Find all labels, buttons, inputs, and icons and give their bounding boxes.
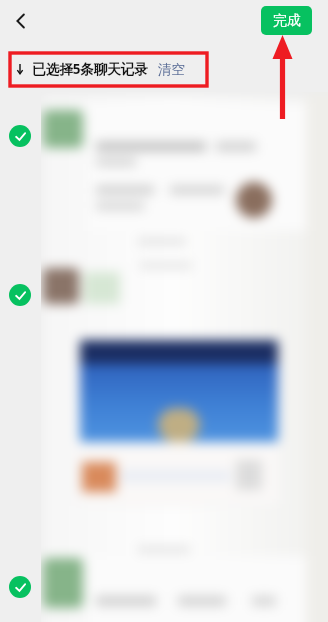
staticText: 完成 [273, 12, 301, 30]
button[interactable]: 已选择5条聊天记录 [14, 58, 185, 80]
staticText: 清空 [158, 61, 185, 78]
button[interactable]: Back [4, 4, 38, 38]
button[interactable]: 完成 [261, 6, 312, 35]
button[interactable]: Selected [9, 125, 31, 147]
button[interactable]: Selected [9, 576, 31, 598]
staticText: 已选择5条聊天记录 [32, 60, 148, 78]
button[interactable]: 清空 [158, 61, 185, 78]
button[interactable]: Selected [9, 284, 31, 306]
